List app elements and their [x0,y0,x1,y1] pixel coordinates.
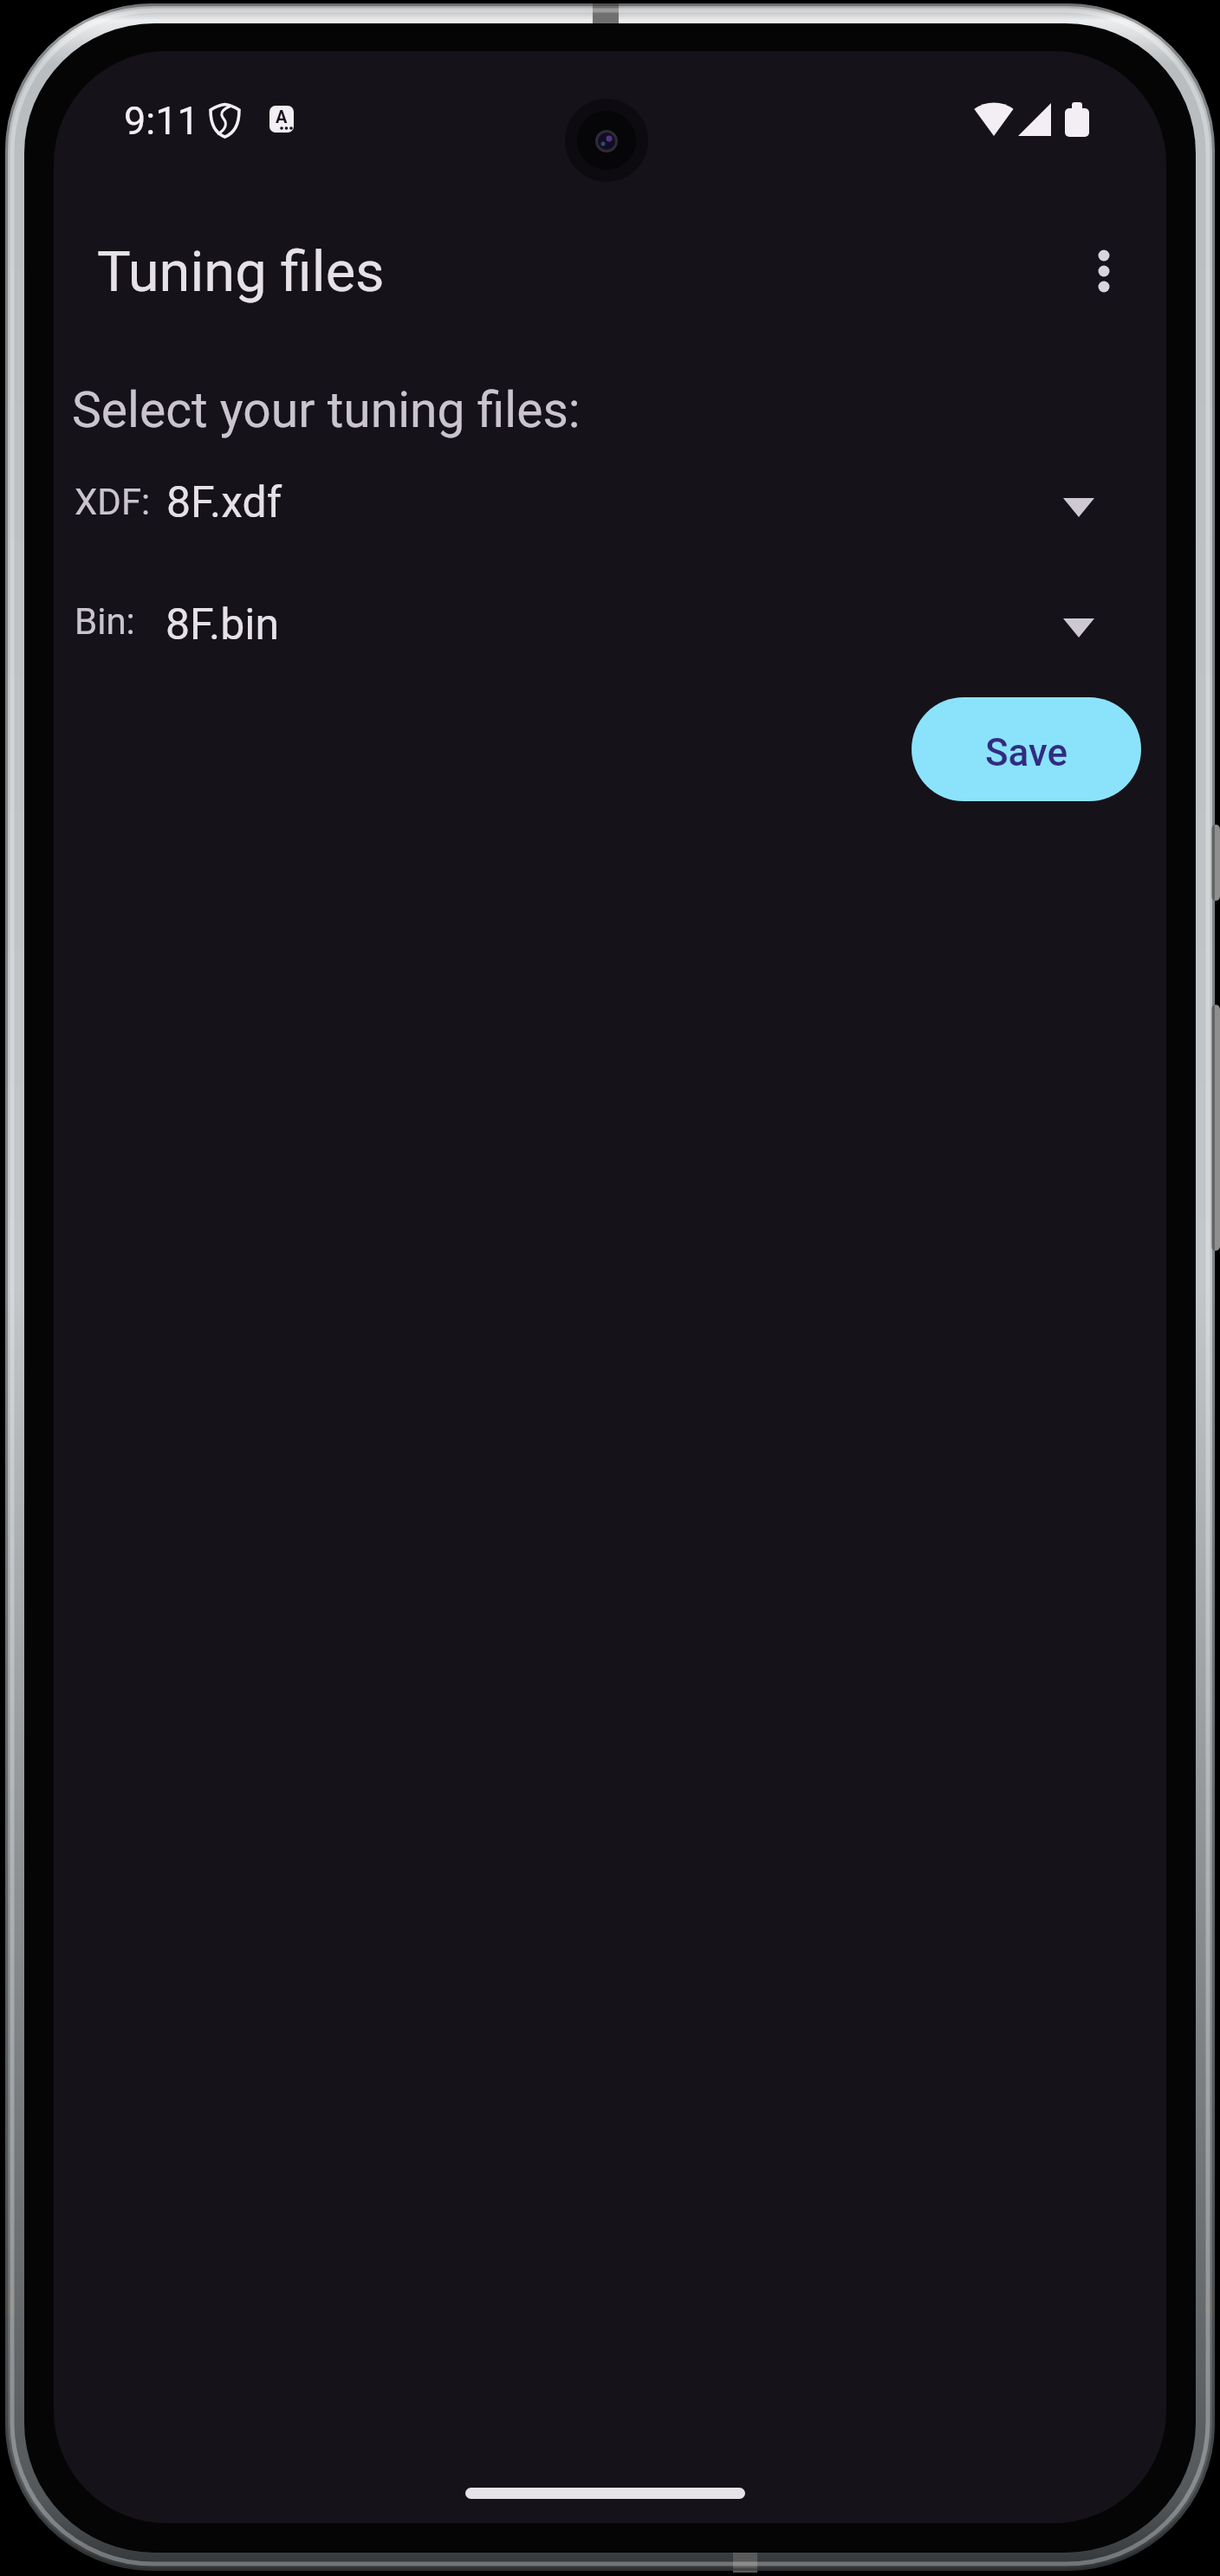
button[interactable]: Bin: [54,587,1166,670]
staticText: 8F.xdf [166,477,282,528]
staticText: XDF: [75,481,151,523]
button[interactable]: Save [912,697,1141,801]
staticText: Bin: [75,600,135,643]
button[interactable] [1062,230,1145,313]
staticText: 8F.bin [165,599,280,650]
staticText: Select your tuning files: [72,381,581,439]
staticText: 9:11 [124,98,199,144]
staticText: Save [985,730,1068,775]
staticText: A [276,107,288,126]
staticText: Tuning files [97,239,385,305]
button[interactable]: XDF: [54,465,1166,548]
